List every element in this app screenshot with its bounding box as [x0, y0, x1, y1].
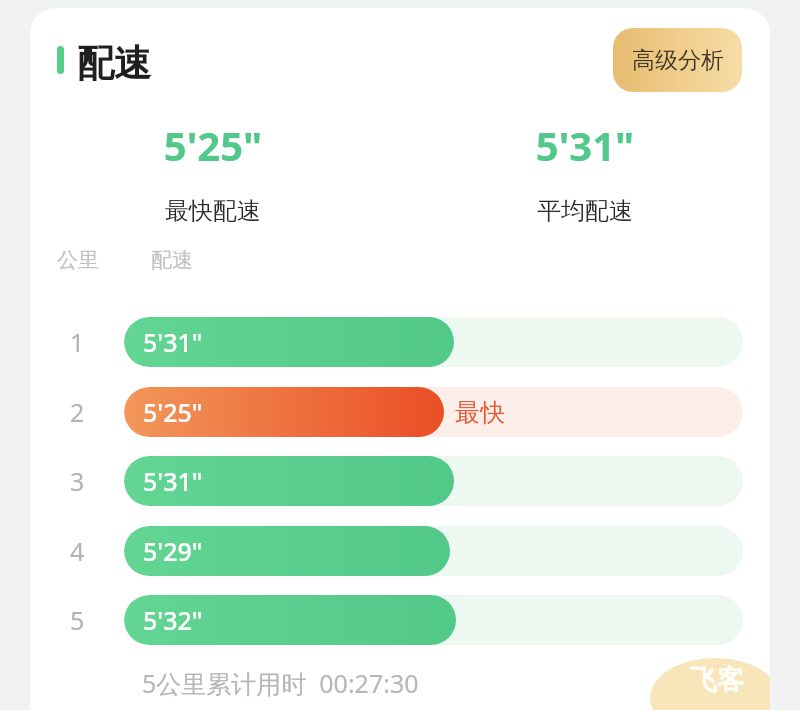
button[interactable]: 4	[50, 526, 743, 576]
button[interactable]: 3	[50, 456, 743, 506]
button[interactable]: 1	[50, 317, 743, 367]
staticText: 5'25"	[83, 118, 343, 172]
staticText: 高级分析	[632, 46, 724, 75]
staticText: 最快	[455, 397, 505, 428]
button[interactable]: 5	[50, 595, 743, 645]
staticText: 平均配速	[455, 196, 715, 226]
staticText: 配速	[151, 247, 193, 273]
button[interactable]: 2	[50, 387, 743, 437]
staticText: 5'31"	[455, 118, 715, 172]
staticText: 5'29"	[143, 534, 203, 568]
staticText: 3	[70, 464, 85, 498]
button[interactable]: 高级分析	[613, 28, 742, 92]
staticText: 2	[70, 395, 85, 429]
staticText: 1	[70, 325, 85, 359]
staticText: 5	[70, 603, 85, 637]
staticText: 5'31"	[143, 325, 203, 359]
staticText: 5'25"	[143, 395, 203, 429]
staticText: 5'31"	[143, 464, 203, 498]
staticText: 5'32"	[143, 603, 203, 637]
staticText: 公里	[57, 247, 99, 273]
staticText: 5公里累计用时 00:27:30	[142, 666, 419, 700]
staticText: 配速	[77, 40, 151, 87]
staticText: 飞客	[690, 663, 744, 697]
staticText: FLYERT	[662, 630, 756, 664]
staticText: 4	[70, 534, 85, 568]
staticText: 最快配速	[83, 196, 343, 226]
